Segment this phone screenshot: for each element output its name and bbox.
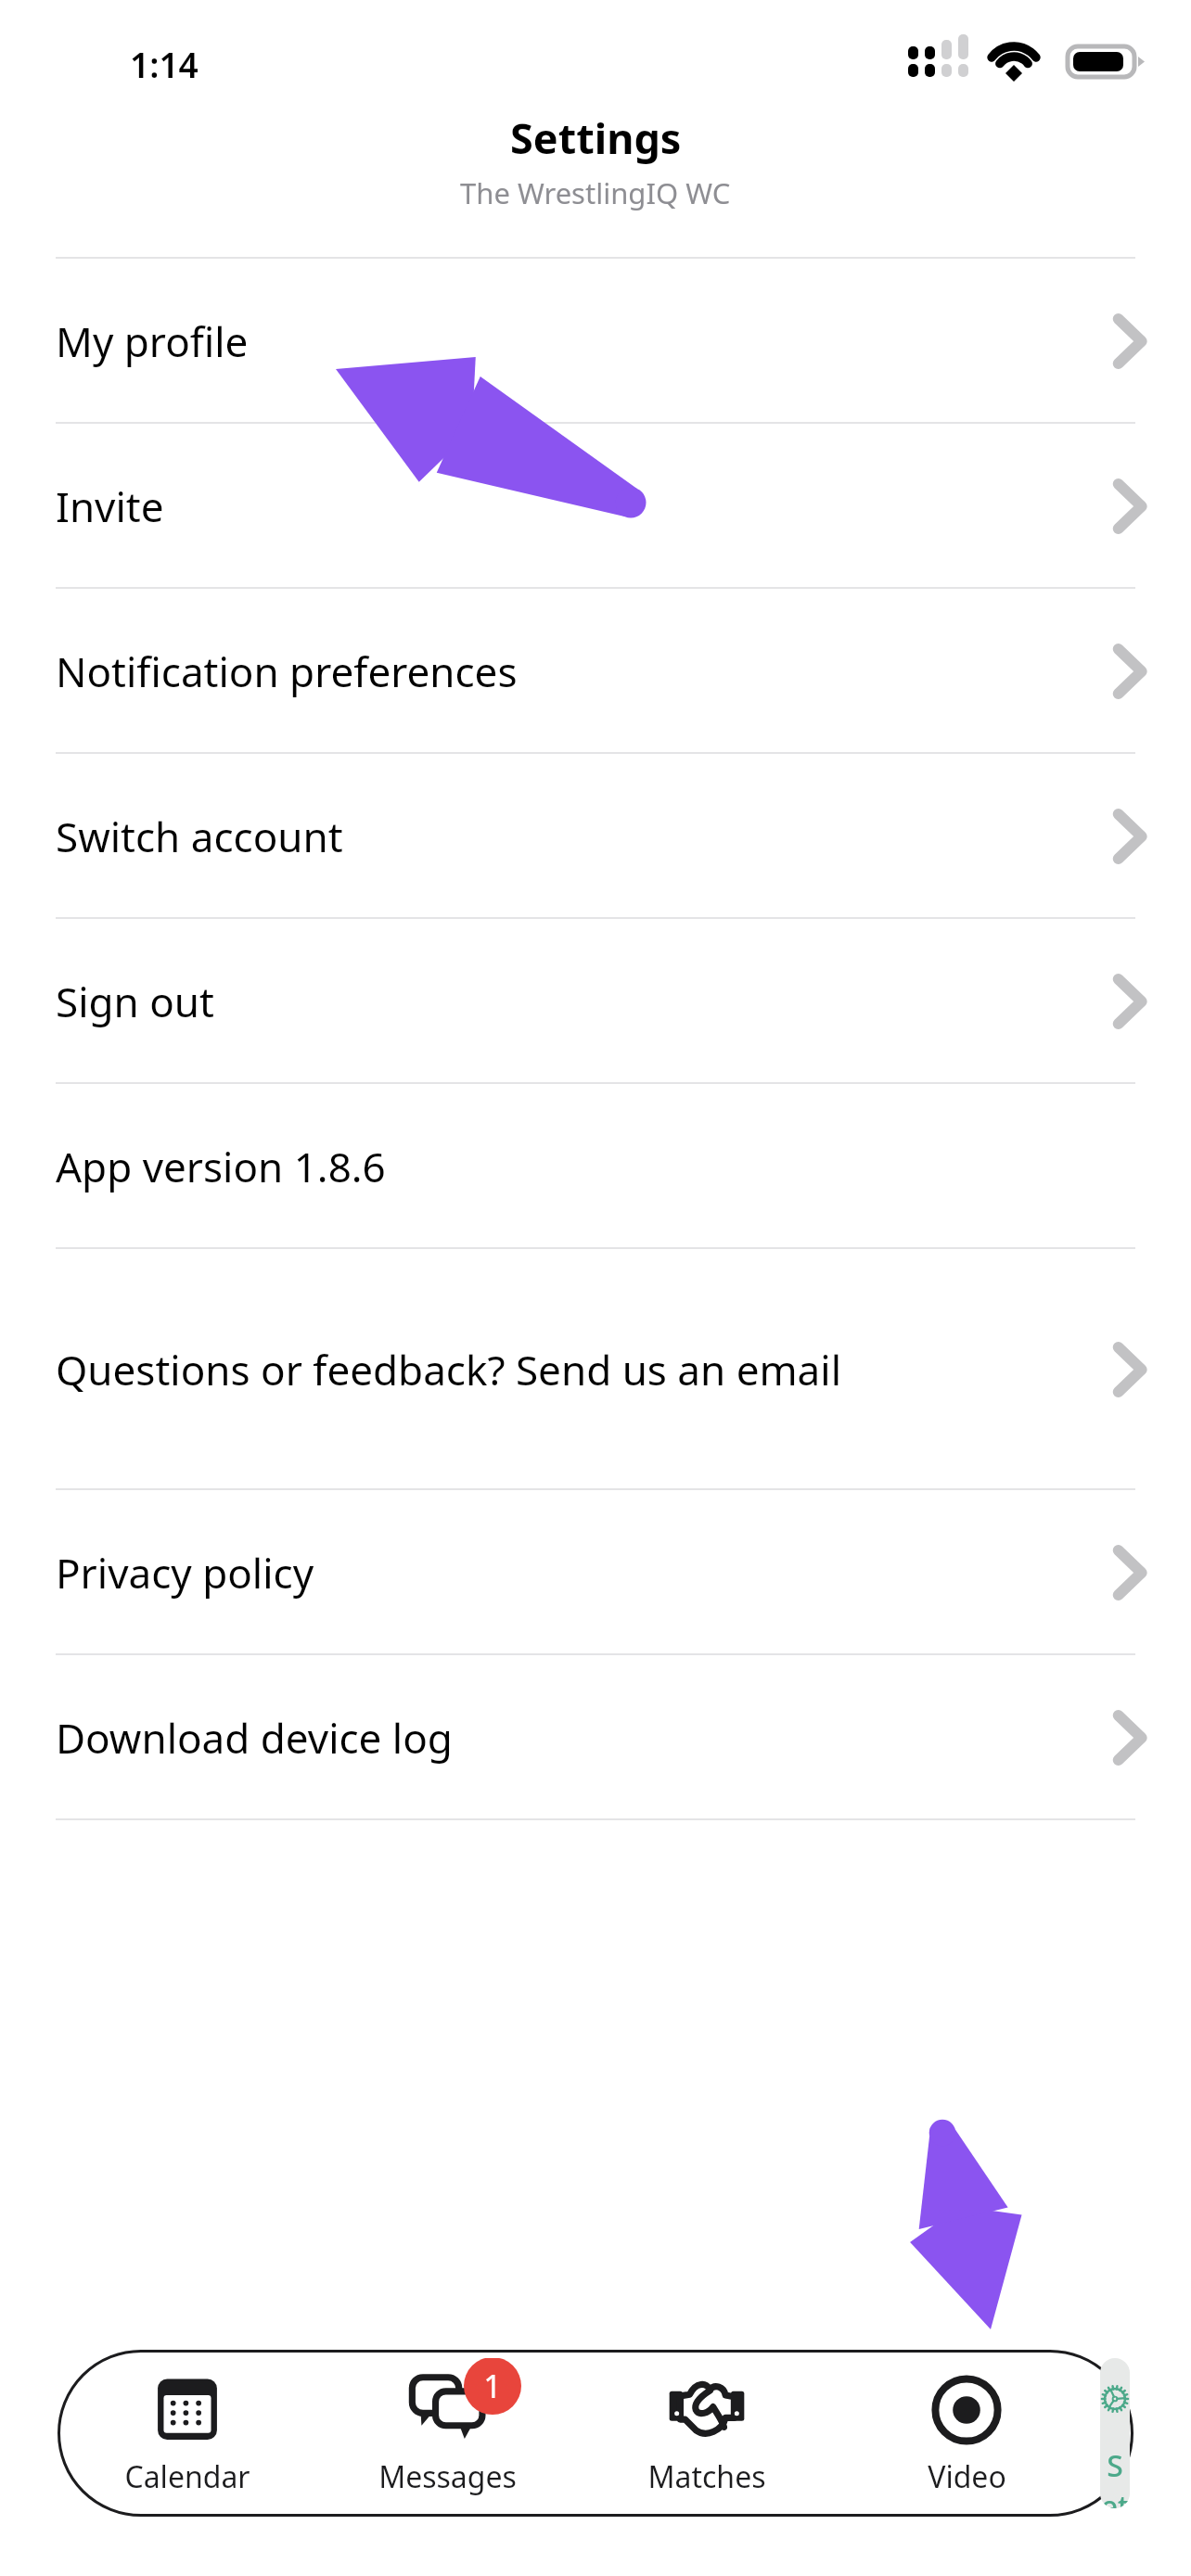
staticText: Video [928,2456,1006,2497]
staticText: Matches [647,2456,766,2497]
button[interactable]: Questions or feedback? Send us an email [0,1249,1191,1490]
button[interactable]: Invite [0,424,1191,589]
staticText: Switch account [56,809,343,864]
button[interactable]: Calendar [61,2358,314,2508]
staticText: Sign out [56,974,214,1029]
staticText: Download device log [56,1710,453,1766]
staticText: Invite [56,478,164,534]
button[interactable]: Privacy policy [0,1490,1191,1655]
button[interactable]: My profile [0,259,1191,424]
button[interactable]: Download device log [0,1655,1191,1820]
staticText: Messages [378,2456,517,2497]
button[interactable]: Sign out [0,919,1191,1084]
button[interactable]: Video [840,2358,1093,2508]
staticText: 1 [483,2365,502,2407]
staticText: Calendar [124,2456,250,2497]
button[interactable]: 1 [321,2358,573,2508]
staticText: 1:14 [130,41,198,87]
staticText: Settings [510,109,682,166]
button[interactable]: Switch account [0,754,1191,919]
button[interactable]: Settings [1100,2358,1130,2508]
staticText: Questions or feedback? Send us an email [56,1342,841,1397]
staticText: App version 1.8.6 [56,1139,386,1194]
button[interactable]: Notification preferences [0,589,1191,754]
staticText: My profile [56,313,249,369]
staticText: Settings [1100,2445,1130,2508]
staticText: The WrestlingIQ WC [460,173,731,212]
staticText: Privacy policy [56,1545,314,1600]
button[interactable]: Matches [581,2358,833,2508]
button[interactable]: App version 1.8.6 [0,1084,1191,1249]
staticText: Notification preferences [56,644,518,699]
